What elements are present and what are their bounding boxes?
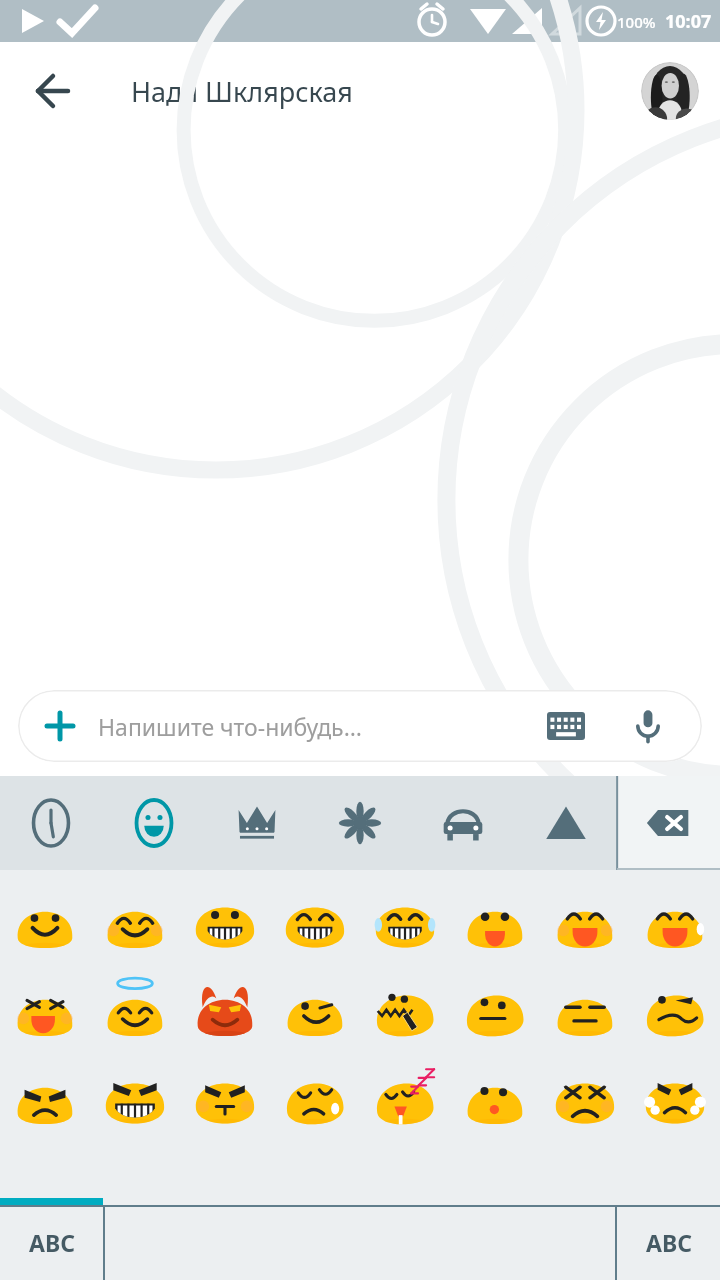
staticText: Напишите что-нибудь… [98, 711, 362, 742]
button[interactable]: Emoji SQUINT_LAUGH [0, 967, 90, 1055]
button[interactable]: Emoji ANGRY [0, 1055, 90, 1143]
button[interactable]: Emoji ZIPPER [360, 967, 450, 1055]
button[interactable]: Emoji BLUSH_SMILE [90, 879, 180, 967]
button[interactable]: Attach [34, 700, 86, 752]
button[interactable]: ABC [617, 1205, 720, 1280]
button[interactable]: Emoji POUT [180, 1055, 270, 1143]
button[interactable]: Keyboard [540, 700, 592, 752]
button[interactable]: Emoji GRIN_OPEN [180, 879, 270, 967]
button[interactable]: Emoji SURPRISED [450, 1055, 540, 1143]
staticText: Надя Шклярская [131, 73, 353, 110]
button[interactable]: Emoji WINK [270, 967, 360, 1055]
button[interactable]: Emoji SMILE [0, 879, 90, 967]
button[interactable]: Smileys [102, 776, 205, 870]
button[interactable]: Emoji WEARY_X [540, 1055, 630, 1143]
button[interactable]: Emoji OPEN_MOUTH_SMILE [450, 879, 540, 967]
button[interactable]: Emoji LAUGH_TEAR [630, 879, 720, 967]
button[interactable]: Emoji TEARS_JOY [360, 879, 450, 967]
button[interactable]: Back [18, 58, 84, 124]
button[interactable]: Emoji CONFUSED [630, 967, 720, 1055]
button[interactable]: Profile photo [641, 62, 699, 120]
button[interactable]: Emoji NEUTRAL [450, 967, 540, 1055]
button[interactable]: Objects [205, 776, 308, 870]
button[interactable]: Emoji ANGRY_STEAM [630, 1055, 720, 1143]
button[interactable]: Emoji ANGEL [90, 967, 180, 1055]
button[interactable]: Emoji DEVIL [180, 967, 270, 1055]
button[interactable]: ABC [0, 1205, 103, 1280]
button[interactable]: Emoji SLEEP [360, 1055, 450, 1143]
button[interactable] [105, 1205, 615, 1280]
button[interactable]: Emoji ANGRY_TEETH [90, 1055, 180, 1143]
button[interactable]: Travel [411, 776, 514, 870]
staticText: 10:07 [665, 9, 712, 34]
button[interactable]: Emoji GRIN_CLOSED [270, 879, 360, 967]
button[interactable]: Symbols [514, 776, 617, 870]
button[interactable]: Emoji SAD_TEAR [270, 1055, 360, 1143]
staticText: ABC [29, 1227, 75, 1258]
staticText: ABC [646, 1227, 692, 1258]
button[interactable]: Emoji EXPRESSIONLESS [540, 967, 630, 1055]
button[interactable]: Attach [18, 690, 702, 762]
button[interactable]: Backspace [617, 776, 720, 870]
button[interactable]: Voice message [620, 698, 676, 754]
button[interactable]: Emoji LAUGH [540, 879, 630, 967]
staticText: 100% [617, 12, 656, 32]
button[interactable]: Recent emoji [0, 776, 102, 870]
button[interactable]: Nature [308, 776, 411, 870]
